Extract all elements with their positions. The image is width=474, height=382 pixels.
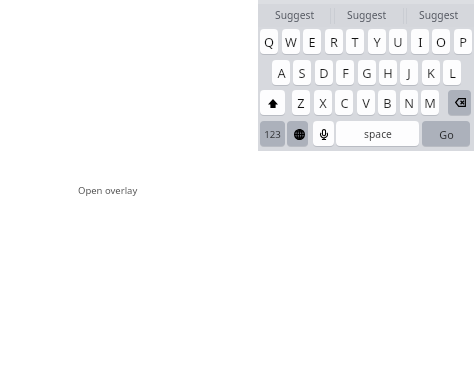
staticText: V xyxy=(362,94,370,111)
button[interactable]: X xyxy=(314,90,332,115)
button[interactable]: C xyxy=(335,90,353,115)
staticText: Y xyxy=(373,33,381,50)
staticText: X xyxy=(319,94,327,111)
button[interactable]: Go xyxy=(422,121,470,146)
staticText: Z xyxy=(297,94,305,111)
staticText: space xyxy=(364,127,392,141)
button[interactable]: Suggest xyxy=(259,3,331,26)
button[interactable]: B xyxy=(378,90,396,115)
button[interactable]: K xyxy=(422,60,440,85)
button[interactable]: T xyxy=(346,29,364,54)
staticText: K xyxy=(427,64,435,81)
staticText: J xyxy=(407,64,411,81)
staticText: G xyxy=(362,64,372,81)
staticText: P xyxy=(459,33,467,50)
staticText: B xyxy=(383,94,392,111)
button[interactable]: Switch keyboard xyxy=(287,121,308,146)
staticText: U xyxy=(393,33,403,50)
button[interactable]: I xyxy=(411,29,429,54)
button[interactable]: F xyxy=(336,60,354,85)
staticText: M xyxy=(424,94,436,111)
staticText: Suggest xyxy=(347,8,387,22)
staticText: F xyxy=(342,64,349,81)
staticText: C xyxy=(340,94,349,111)
button[interactable]: L xyxy=(443,60,461,85)
staticText: H xyxy=(383,64,393,81)
button[interactable]: J xyxy=(400,60,418,85)
staticText: D xyxy=(319,64,329,81)
staticText: N xyxy=(404,94,414,111)
button[interactable]: V xyxy=(357,90,375,115)
button[interactable]: W xyxy=(282,29,300,54)
button[interactable]: Voice input xyxy=(313,121,334,146)
button[interactable]: Open overlay xyxy=(78,184,138,197)
button[interactable]: E xyxy=(303,29,321,54)
button[interactable]: Shift xyxy=(260,90,285,115)
button[interactable]: M xyxy=(421,90,439,115)
button[interactable]: R xyxy=(325,29,343,54)
staticText: A xyxy=(277,64,286,81)
staticText: Go xyxy=(439,127,454,142)
staticText: O xyxy=(436,33,446,50)
staticText: Open overlay xyxy=(78,184,138,197)
staticText: R xyxy=(330,33,338,50)
staticText: E xyxy=(308,33,316,50)
button[interactable]: Suggest xyxy=(403,3,474,26)
button[interactable]: S xyxy=(293,60,311,85)
staticText: I xyxy=(418,33,423,50)
button[interactable]: 123 xyxy=(260,121,285,146)
button[interactable]: A xyxy=(272,60,290,85)
button[interactable]: Y xyxy=(368,29,386,54)
staticText: Q xyxy=(264,33,274,50)
button[interactable]: space xyxy=(336,121,419,146)
button[interactable]: Z xyxy=(292,90,310,115)
button[interactable]: U xyxy=(389,29,407,54)
staticText: 123 xyxy=(264,128,281,141)
staticText: W xyxy=(285,33,297,50)
button[interactable]: O xyxy=(432,29,450,54)
staticText: S xyxy=(298,64,306,81)
staticText: Suggest xyxy=(275,8,315,22)
staticText: T xyxy=(351,33,359,50)
button[interactable]: Backspace xyxy=(448,90,471,115)
button[interactable]: P xyxy=(454,29,472,54)
button[interactable]: G xyxy=(358,60,376,85)
button[interactable]: D xyxy=(315,60,333,85)
button[interactable]: N xyxy=(400,90,418,115)
button[interactable]: H xyxy=(379,60,397,85)
button[interactable]: Suggest xyxy=(331,3,403,26)
button[interactable]: Q xyxy=(260,29,278,54)
staticText: L xyxy=(449,64,456,81)
staticText: Suggest xyxy=(419,8,459,22)
